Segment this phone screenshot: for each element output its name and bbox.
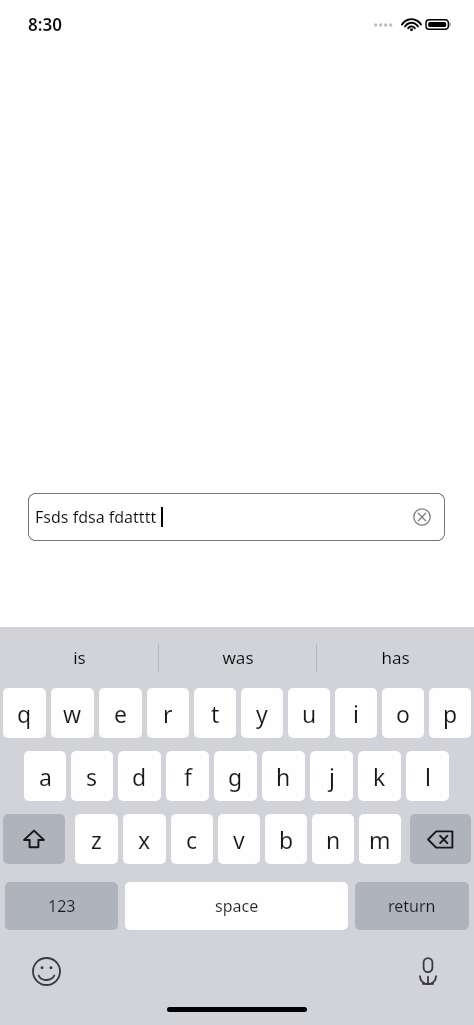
- staticText: i: [353, 698, 359, 729]
- staticText: t: [211, 698, 220, 729]
- staticText: w: [63, 698, 82, 729]
- staticText: is: [73, 646, 86, 669]
- button[interactable]: u: [288, 688, 330, 738]
- button[interactable]: f: [166, 751, 209, 801]
- staticText: x: [138, 824, 151, 855]
- button[interactable]: x: [123, 814, 166, 864]
- button[interactable]: b: [265, 814, 307, 864]
- staticText: q: [17, 698, 32, 729]
- staticText: return: [388, 895, 436, 917]
- staticText: n: [326, 824, 341, 855]
- staticText: g: [228, 761, 243, 792]
- button[interactable]: has: [317, 627, 474, 688]
- button[interactable]: was: [159, 627, 316, 688]
- staticText: f: [184, 761, 192, 792]
- staticText: z: [91, 824, 102, 855]
- button[interactable]: return: [355, 882, 469, 930]
- staticText: o: [396, 698, 410, 729]
- button[interactable]: h: [262, 751, 305, 801]
- button[interactable]: Emoji keyboard: [28, 953, 64, 989]
- button[interactable]: a: [24, 751, 66, 801]
- button[interactable]: g: [214, 751, 257, 801]
- staticText: k: [373, 761, 386, 792]
- staticText: v: [233, 824, 245, 855]
- button[interactable]: s: [71, 751, 113, 801]
- staticText: d: [132, 761, 147, 792]
- button[interactable]: i: [335, 688, 377, 738]
- button[interactable]: t: [194, 688, 236, 738]
- button[interactable]: Dictation: [410, 953, 446, 989]
- button[interactable]: p: [429, 688, 471, 738]
- button[interactable]: q: [3, 688, 46, 738]
- staticText: Fsds fdsa fdatttt: [35, 506, 157, 528]
- staticText: a: [39, 761, 52, 792]
- staticText: was: [222, 646, 254, 669]
- button[interactable]: j: [310, 751, 353, 801]
- button[interactable]: l: [406, 751, 449, 801]
- button[interactable]: e: [99, 688, 142, 738]
- button[interactable]: z: [75, 814, 118, 864]
- staticText: y: [256, 698, 268, 729]
- staticText: p: [443, 698, 458, 729]
- button[interactable]: r: [147, 688, 189, 738]
- button[interactable]: space: [125, 882, 348, 930]
- staticText: 8:30: [28, 13, 62, 36]
- staticText: 123: [48, 895, 76, 917]
- button[interactable]: m: [359, 814, 401, 864]
- staticText: c: [186, 824, 198, 855]
- button[interactable]: Shift: [3, 814, 65, 864]
- button[interactable]: y: [241, 688, 283, 738]
- button[interactable]: o: [382, 688, 424, 738]
- button[interactable]: is: [0, 627, 158, 688]
- staticText: u: [302, 698, 317, 729]
- button[interactable]: c: [171, 814, 213, 864]
- button[interactable]: w: [51, 688, 94, 738]
- staticText: m: [369, 824, 391, 855]
- staticText: r: [163, 698, 173, 729]
- button[interactable]: Clear text: [409, 504, 435, 530]
- staticText: has: [381, 646, 410, 669]
- button[interactable]: d: [118, 751, 161, 801]
- staticText: b: [279, 824, 294, 855]
- button[interactable]: 123: [5, 882, 118, 930]
- button[interactable]: Backspace: [410, 814, 471, 864]
- staticText: l: [425, 761, 431, 792]
- staticText: h: [276, 761, 291, 792]
- button[interactable]: k: [358, 751, 401, 801]
- staticText: s: [86, 761, 98, 792]
- staticText: j: [329, 761, 335, 792]
- staticText: space: [215, 895, 259, 917]
- button[interactable]: n: [312, 814, 354, 864]
- button[interactable]: v: [218, 814, 260, 864]
- staticText: e: [114, 698, 127, 729]
- button[interactable]: Fsds fdsa fdatttt: [28, 493, 445, 541]
